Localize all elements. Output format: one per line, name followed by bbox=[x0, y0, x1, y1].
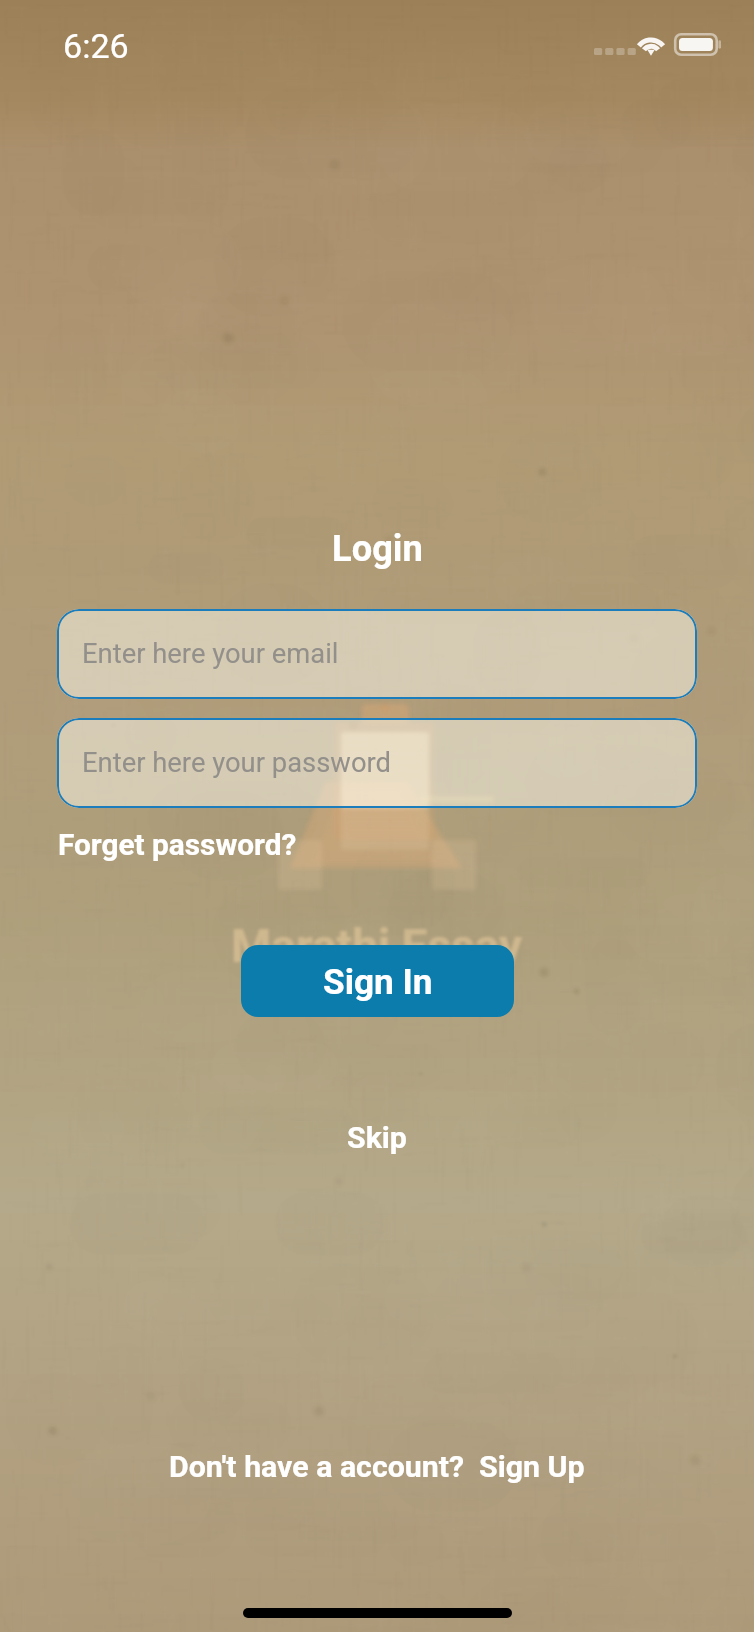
staticText: 6:26 bbox=[63, 26, 129, 66]
staticText: Login bbox=[332, 527, 423, 570]
other: Battery bbox=[674, 33, 722, 56]
staticText: Enter here your password bbox=[82, 747, 392, 779]
staticText: Forget password? bbox=[58, 827, 297, 862]
button[interactable]: Forget password? bbox=[58, 827, 297, 862]
button[interactable]: Enter here your email bbox=[57, 609, 697, 699]
staticText: Sign In bbox=[323, 961, 433, 1002]
staticText: Marathi Essay bbox=[231, 919, 523, 973]
other: Wi-Fi bbox=[635, 33, 667, 56]
staticText: Skip bbox=[347, 1120, 407, 1156]
staticText: Sign Up bbox=[479, 1449, 585, 1485]
staticText: Don't have a account? bbox=[169, 1449, 465, 1485]
button[interactable]: Skip bbox=[331, 1112, 423, 1164]
button[interactable]: Sign In bbox=[241, 945, 514, 1017]
staticText: Enter here your email bbox=[82, 638, 339, 670]
other: Cellular signal bbox=[594, 48, 628, 56]
button[interactable]: Sign Up bbox=[479, 1449, 585, 1485]
button[interactable]: Enter here your password bbox=[57, 718, 697, 808]
